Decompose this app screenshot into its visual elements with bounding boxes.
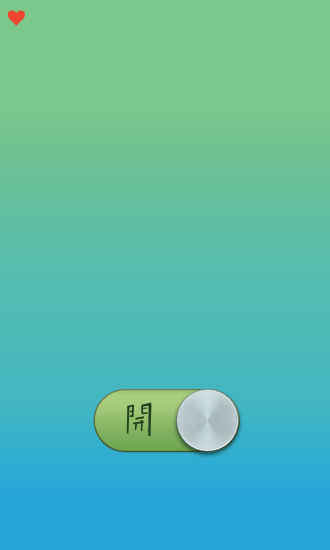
button[interactable]: Power toggle, on xyxy=(88,384,248,458)
button[interactable]: Favorite xyxy=(4,7,28,29)
